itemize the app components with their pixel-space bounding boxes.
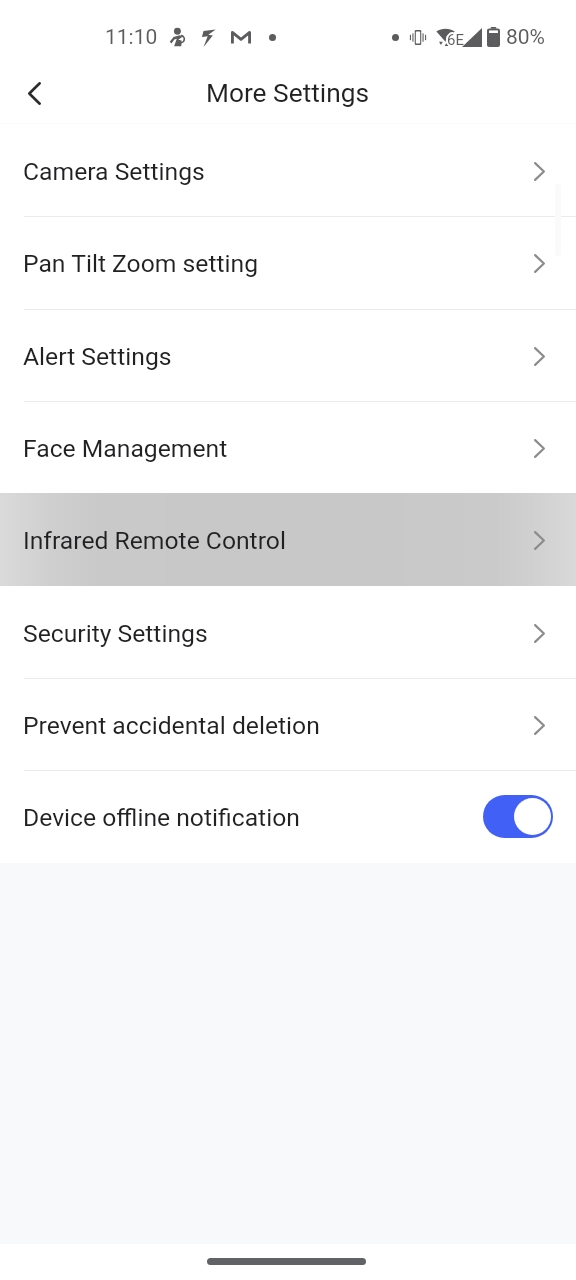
staticText: Pan Tilt Zoom setting xyxy=(23,249,259,278)
staticText: Infrared Remote Control xyxy=(23,526,286,555)
staticText: 6E xyxy=(448,31,465,49)
staticText: More Settings xyxy=(206,78,370,109)
staticText: Security Settings xyxy=(23,619,208,648)
button[interactable]: Camera Settings xyxy=(0,124,576,216)
staticText: Device offline notification xyxy=(23,803,300,832)
button[interactable]: Infrared Remote Control xyxy=(0,493,576,586)
button[interactable]: Device offline notification toggle xyxy=(483,795,553,838)
staticText: Prevent accidental deletion xyxy=(23,711,320,740)
staticText: 6E xyxy=(449,31,466,49)
staticText: 6E xyxy=(447,31,464,49)
button[interactable]: Prevent accidental deletion xyxy=(0,678,576,770)
staticText: 6E xyxy=(447,31,464,49)
button[interactable]: Face Management xyxy=(0,401,576,493)
staticText: 11:10 xyxy=(105,25,158,50)
button[interactable]: Pan Tilt Zoom setting xyxy=(0,216,576,309)
staticText: 6E xyxy=(448,30,465,48)
button[interactable]: Device offline notification xyxy=(0,770,576,863)
staticText: 6E xyxy=(448,32,465,50)
staticText: Camera Settings xyxy=(23,157,205,186)
staticText: 6E xyxy=(446,31,463,49)
staticText: 6E xyxy=(446,30,463,48)
button[interactable]: Back xyxy=(12,71,56,115)
staticText: 6E xyxy=(447,29,464,47)
staticText: 6E xyxy=(447,33,464,51)
button[interactable]: Alert Settings xyxy=(0,309,576,401)
staticText: 80% xyxy=(506,25,545,50)
staticText: 6E xyxy=(447,30,464,48)
staticText: 6E xyxy=(446,32,463,50)
staticText: 6E xyxy=(445,31,462,49)
staticText: Alert Settings xyxy=(23,342,172,371)
staticText: 6E xyxy=(447,32,464,50)
staticText: Face Management xyxy=(23,434,228,463)
button[interactable]: Security Settings xyxy=(0,586,576,678)
